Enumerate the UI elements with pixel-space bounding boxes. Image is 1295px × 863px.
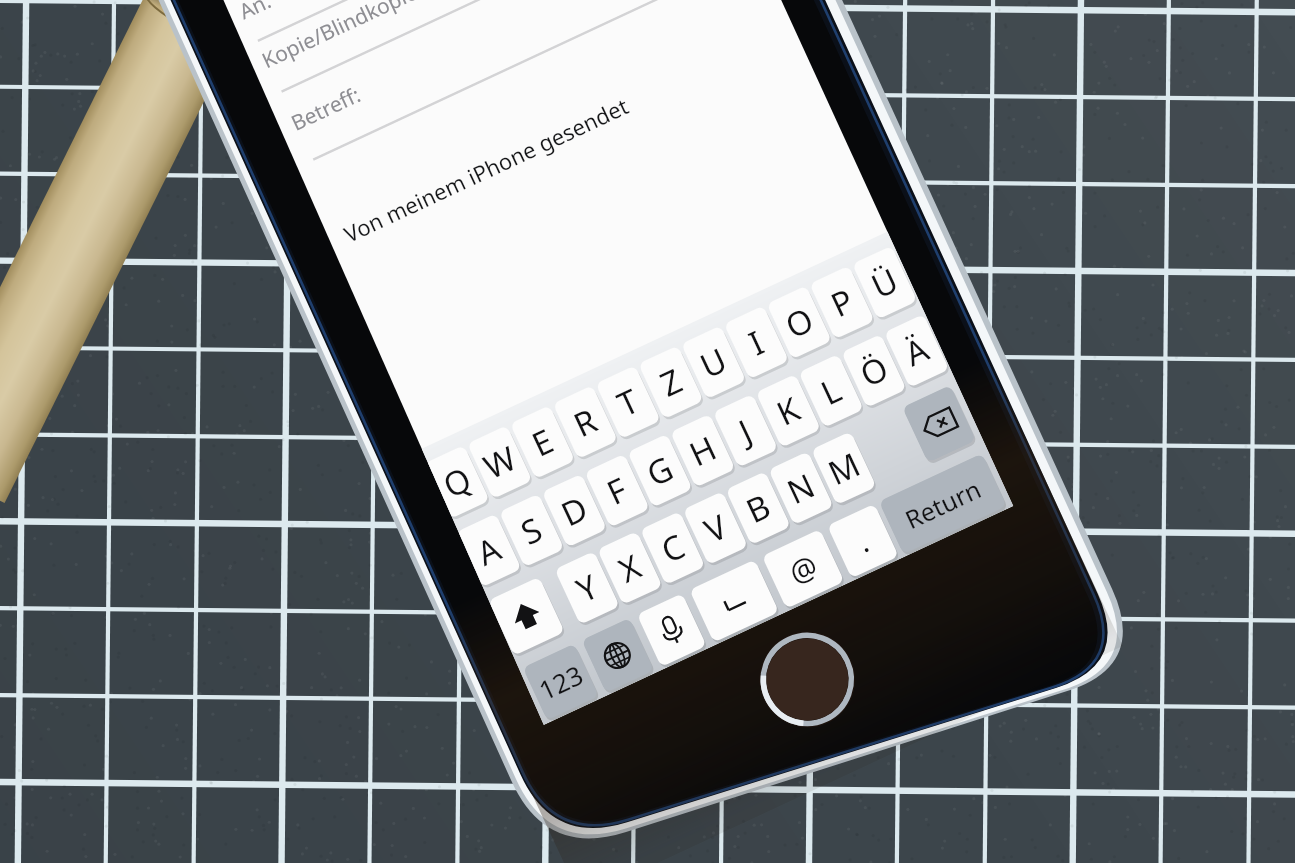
button[interactable]: Delete (900, 400, 980, 462)
button[interactable]: Message body (320, 110, 840, 290)
button[interactable]: Home button (761, 633, 854, 726)
button[interactable]: Switch keyboard language (582, 615, 652, 685)
button[interactable]: Subject field (300, 18, 780, 138)
button[interactable]: Space (700, 565, 790, 635)
button[interactable]: Return key (880, 455, 1010, 550)
button[interactable]: Numbers and symbols (515, 640, 590, 710)
button[interactable]: Keyboard (430, 240, 1010, 730)
button[interactable]: Dictate (645, 595, 707, 661)
